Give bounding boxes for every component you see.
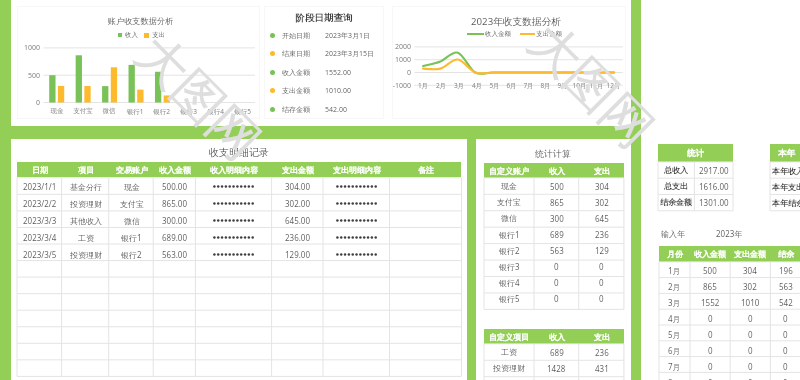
button[interactable]: 5月 [659,326,800,342]
staticText: 支出金额 [734,249,766,259]
button[interactable] [17,314,461,331]
staticText: 302 [743,281,757,292]
staticText: 1301.00 [699,197,729,208]
button[interactable]: 支出金额 [264,84,384,96]
staticText: 0 [708,361,713,372]
button[interactable]: 银行1 [484,226,624,242]
button[interactable]: 银行5 [484,290,624,306]
staticText: 236.00 [285,232,311,243]
staticText: 1000 [17,43,40,53]
staticText: 0 [748,345,753,356]
button[interactable]: 收入金额 [264,66,384,78]
staticText: 总支出 [664,181,688,191]
button[interactable] [17,297,461,314]
button[interactable]: 支付宝 [484,194,624,210]
staticText: 302 [595,197,609,208]
button[interactable]: 2023/3/5 [17,246,461,263]
staticText: 2023/1/1 [23,181,57,192]
button[interactable]: 结存金额 [264,103,384,115]
staticText: 431 [595,363,609,374]
staticText: 支付宝 [70,107,96,115]
staticText: -1000 [392,81,411,91]
staticText: 8月 [537,81,554,90]
staticText: 6月 [503,81,520,90]
button[interactable]: 2月 [659,278,800,294]
staticText: 收入 [125,31,138,39]
staticText: 0 [783,313,788,324]
button[interactable]: 4月 [659,310,800,326]
button[interactable]: 2023年收支数据分析 [392,6,626,119]
staticText: 236 [595,229,609,240]
staticText: 1552 [701,297,720,308]
button[interactable]: 2023/3/4 [17,229,461,246]
button[interactable]: 账户收支数据分析 [17,6,260,119]
staticText: 689.00 [162,232,188,243]
button[interactable] [17,331,461,348]
button[interactable]: 工资 [484,344,624,360]
staticText: 银行2 [499,245,520,256]
staticText: 其他收入 [70,216,102,226]
staticText: 交易账户 [116,165,148,175]
button[interactable]: 2023/2/2 [17,195,461,212]
staticText: 银行5 [229,107,256,116]
button[interactable]: 1月 [659,262,800,278]
staticText: 投资理财 [493,363,525,373]
button[interactable]: 现金 [484,178,624,194]
button[interactable] [17,348,461,365]
staticText: 2023年3月15日 [325,49,375,59]
button[interactable]: 结余金额 [658,194,733,210]
staticText: 542 [779,297,793,308]
staticText: 收入明细内容 [210,165,258,175]
staticText: 6月 [668,345,681,356]
button[interactable] [484,376,624,380]
button[interactable]: 3月 [659,294,800,310]
button[interactable]: 结束日期 [264,47,384,59]
staticText: 0 [783,329,788,340]
button[interactable]: 统计 [658,144,733,162]
staticText: 0 [708,329,713,340]
staticText: 563 [550,245,564,256]
staticText: 结余 [778,249,794,259]
staticText: 865 [550,197,564,208]
staticText: 1月 [668,265,681,276]
button[interactable]: 银行2 [484,242,624,258]
staticText: 10月 [571,81,588,90]
staticText: 微信 [96,107,122,115]
button[interactable]: 银行4 [484,274,624,290]
button[interactable]: 7月 [659,358,800,374]
staticText: 689 [550,347,564,358]
button[interactable]: 8月 [659,374,800,380]
staticText: 0 [708,313,713,324]
staticText: 0 [708,377,713,380]
staticText: 本年收入 [772,166,800,176]
button[interactable] [17,263,461,280]
button[interactable]: 2023/3/3 [17,212,461,229]
staticText: 500 [550,181,564,192]
button[interactable]: 投资理财 [484,360,624,376]
button[interactable] [17,280,461,297]
button[interactable]: 总收入 [658,162,733,178]
button[interactable]: 6月 [659,342,800,358]
staticText: 542.00 [325,105,347,115]
staticText: 0 [17,98,40,108]
button[interactable]: 银行3 [484,258,624,274]
staticText: 工资 [78,233,94,243]
button[interactable]: 微信 [484,210,624,226]
staticText: 1428 [547,363,566,374]
staticText: 2917.00 [699,165,729,176]
staticText: 工资 [501,347,517,357]
staticText: 2023/3/5 [23,249,57,260]
staticText: 2000 [392,42,411,52]
button[interactable]: 2023/1/1 [17,178,461,195]
staticText: 1010.00 [325,86,351,96]
button[interactable]: 阶段日期查询 [264,6,384,119]
staticText: 0 [599,293,604,304]
staticText: 支出 [594,166,610,176]
button[interactable] [17,365,461,380]
button[interactable]: 总支出 [658,178,733,194]
staticText: 0 [748,313,753,324]
button[interactable]: 开始日期 [264,29,384,41]
staticText: 236 [595,347,609,358]
staticText: 统计计算 [484,148,622,159]
staticText: 0 [783,361,788,372]
